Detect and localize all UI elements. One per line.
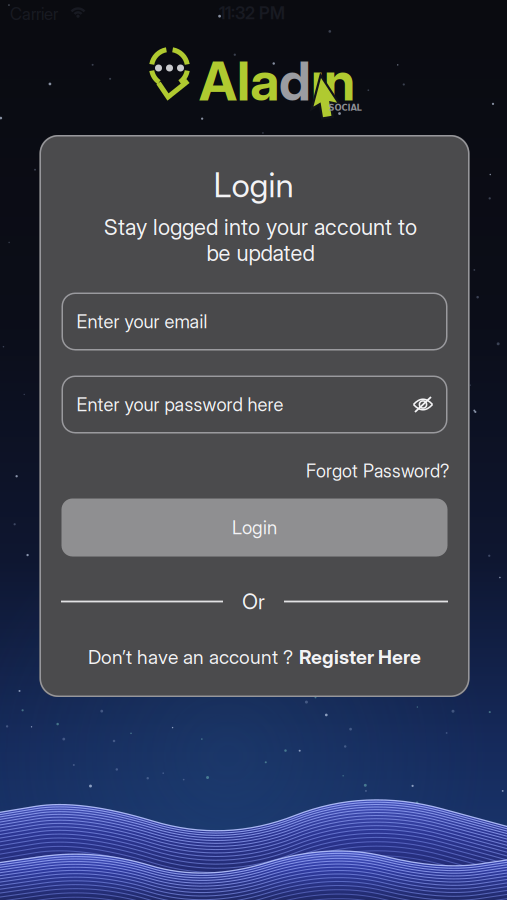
staticText: Stay logged into your account to bbox=[104, 214, 417, 240]
staticText: Or bbox=[242, 589, 265, 614]
button[interactable]: Forgot Password? bbox=[306, 460, 449, 482]
staticText: 11:32 PM bbox=[219, 3, 285, 23]
staticText: ın bbox=[311, 49, 355, 113]
staticText: Ala bbox=[199, 49, 279, 113]
staticText: Enter your password here bbox=[76, 393, 283, 416]
staticText: be updated bbox=[206, 240, 314, 266]
staticText: d bbox=[279, 49, 311, 113]
staticText: Forgot Password? bbox=[306, 460, 449, 482]
button[interactable]: Register Here bbox=[299, 645, 421, 669]
button[interactable]: Enter your email bbox=[61, 292, 447, 350]
staticText: SOCIAL bbox=[328, 102, 361, 113]
staticText: Register Here bbox=[299, 645, 421, 669]
staticText: Enter your email bbox=[76, 310, 207, 333]
button[interactable]: Enter your password here bbox=[61, 375, 447, 433]
staticText: Login bbox=[232, 516, 277, 539]
staticText: Carrier bbox=[10, 4, 58, 24]
button[interactable]: Show password bbox=[412, 395, 434, 413]
staticText: Login bbox=[213, 165, 293, 205]
button[interactable]: Login bbox=[61, 498, 447, 556]
staticText: Don’t have an account ? bbox=[88, 645, 293, 669]
